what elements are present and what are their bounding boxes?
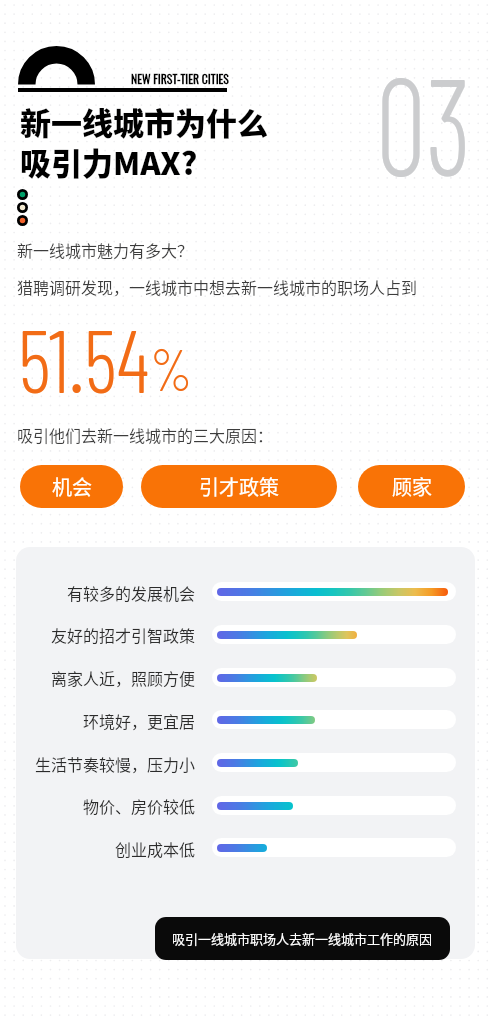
staticText: 生活节奏较慢，压力小 [35, 752, 196, 775]
staticText: 友好的招才引智政策 [51, 623, 196, 646]
button[interactable]: 机会 [20, 465, 123, 508]
button[interactable]: 引才政策 [141, 465, 337, 508]
staticText: 创业成本低 [115, 837, 196, 860]
staticText: 新一线城市为什么 [20, 99, 268, 144]
staticText: 51.54 [18, 305, 150, 411]
staticText: 顾家 [392, 472, 432, 501]
staticText: NEW FIRST-TIER CITIES [131, 70, 229, 88]
button[interactable]: 顾家 [358, 465, 465, 508]
staticText: % [150, 333, 193, 403]
staticText: 吸引一线城市职场人去新一线城市工作的原因 [172, 929, 433, 948]
staticText: 引才政策 [199, 472, 279, 501]
staticText: 离家人近，照顾方便 [51, 666, 196, 689]
staticText: 物价、房价较低 [83, 794, 196, 817]
staticText: 吸引力MAX? [20, 139, 198, 184]
staticText: 环境好，更宜居 [83, 709, 196, 732]
staticText: 猎聘调研发现，一线城市中想去新一线城市的职场人占到 [17, 275, 418, 298]
staticText: 吸引他们去新一线城市的三大原因： [17, 423, 274, 446]
button[interactable]: 吸引一线城市职场人去新一线城市工作的原因 [155, 917, 450, 960]
staticText: 机会 [52, 472, 92, 501]
staticText: 03 [376, 38, 472, 204]
staticText: 新一线城市魅力有多大？ [17, 238, 194, 261]
staticText: 有较多的发展机会 [67, 581, 196, 604]
